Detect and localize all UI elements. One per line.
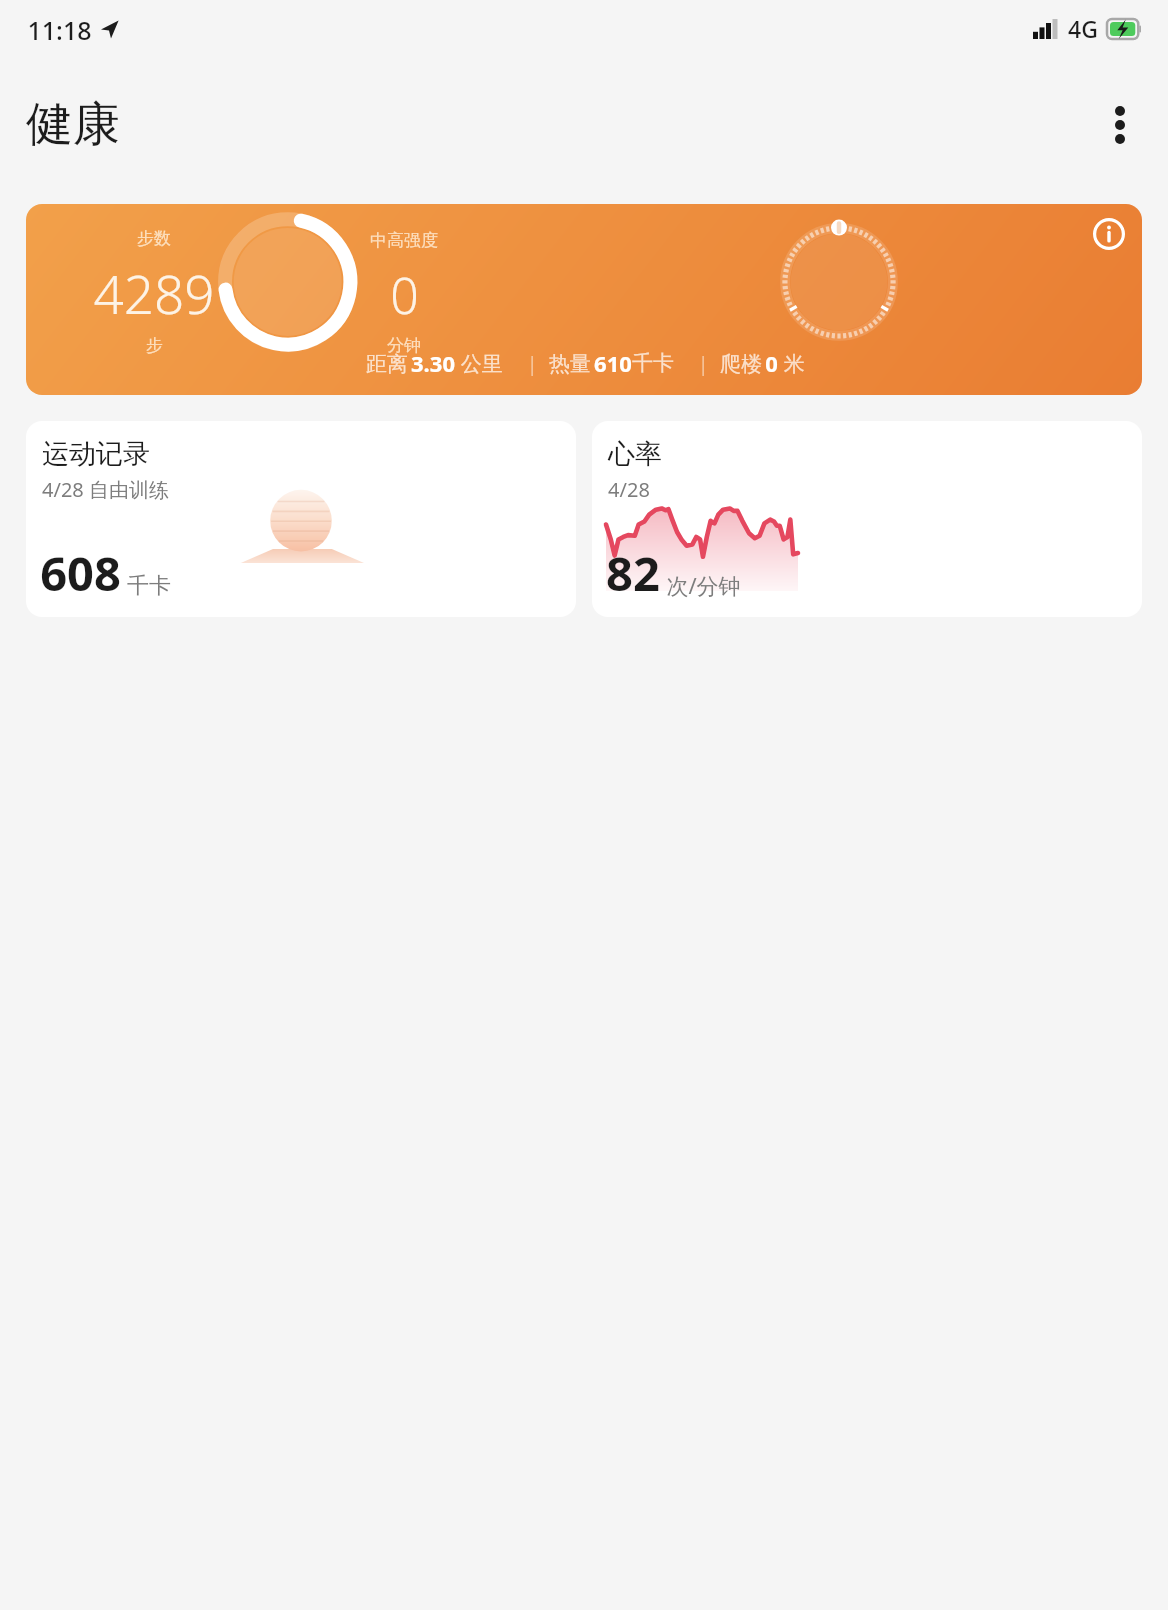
staticText: 爬楼: [717, 349, 765, 378]
staticText: 4G: [1068, 13, 1098, 44]
staticText: 4/28 自由训练: [42, 476, 169, 503]
staticText: |: [503, 350, 546, 377]
staticText: 健康: [26, 95, 120, 154]
staticText: 心率: [608, 437, 662, 471]
staticText: 610: [594, 348, 632, 378]
staticText: 步: [146, 335, 163, 356]
staticText: 中高强度: [370, 230, 438, 251]
staticText: 4/28: [608, 476, 650, 503]
button[interactable]: 心率: [592, 421, 1142, 617]
staticText: 步数: [137, 228, 171, 249]
staticText: 4289: [93, 257, 215, 329]
staticText: |: [674, 350, 717, 377]
staticText: 次/分钟: [666, 570, 741, 600]
staticText: 82: [606, 541, 660, 605]
staticText: 千卡: [127, 572, 171, 600]
button[interactable]: Info: [1087, 212, 1131, 256]
staticText: 千卡: [632, 350, 674, 376]
staticText: 0: [390, 261, 419, 329]
staticText: 运动记录: [42, 437, 150, 471]
button[interactable]: 运动记录: [26, 421, 576, 617]
staticText: 热量: [546, 349, 594, 378]
button[interactable]: More options: [1092, 97, 1148, 153]
staticText: 608: [40, 541, 121, 605]
staticText: 3.30: [411, 348, 455, 378]
staticText: 公里: [455, 349, 503, 378]
staticText: 米: [778, 349, 805, 378]
button[interactable]: 步数: [26, 204, 1142, 395]
staticText: 分钟: [387, 335, 421, 356]
staticText: 11:18: [27, 13, 92, 47]
staticText: 0: [765, 348, 778, 378]
staticText: 距离: [363, 349, 411, 378]
